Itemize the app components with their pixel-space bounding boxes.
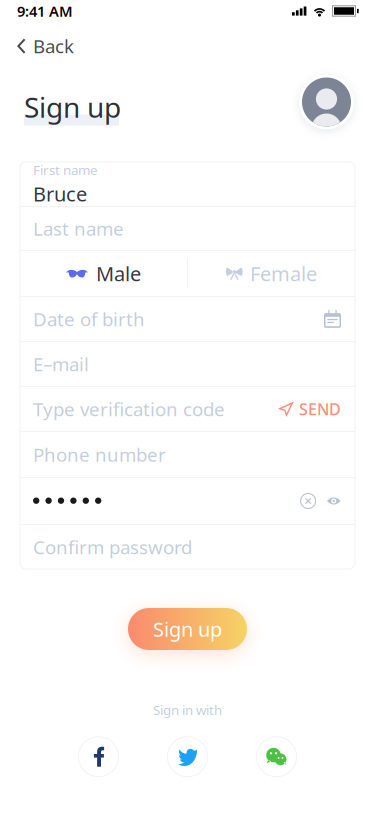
button[interactable]: Sign in with WeChat <box>256 737 296 777</box>
staticText: Type verification code <box>33 397 225 421</box>
staticText: Sign up <box>153 616 222 642</box>
staticText: E–mail <box>33 352 89 376</box>
button[interactable]: Clear <box>301 493 316 508</box>
staticText: Sign up <box>24 88 121 126</box>
staticText: Sign in with <box>153 701 222 719</box>
staticText: Back <box>33 34 74 58</box>
staticText: 9:41 AM <box>17 1 73 21</box>
staticText: Female <box>250 260 317 287</box>
staticText: Confirm password <box>33 535 192 559</box>
staticText: Date of birth <box>33 307 145 331</box>
staticText: SEND <box>299 398 341 420</box>
staticText: Male <box>96 260 141 287</box>
button[interactable]: Female <box>188 251 355 296</box>
button[interactable]: SEND <box>279 398 341 420</box>
staticText: First name <box>33 161 98 179</box>
button[interactable]: Sign in with Twitter <box>167 737 207 777</box>
button[interactable]: Pick date <box>324 310 341 328</box>
button[interactable]: Back <box>0 30 90 62</box>
button[interactable]: Sign in with Facebook <box>78 737 118 777</box>
staticText: Last name <box>33 216 124 241</box>
button[interactable]: Male <box>20 251 187 296</box>
button[interactable]: Sign up <box>128 608 247 650</box>
button[interactable]: Show password <box>316 496 341 506</box>
button[interactable]: Profile photo <box>299 74 354 129</box>
staticText: Phone number <box>33 442 166 467</box>
staticText: Bruce <box>33 181 87 207</box>
